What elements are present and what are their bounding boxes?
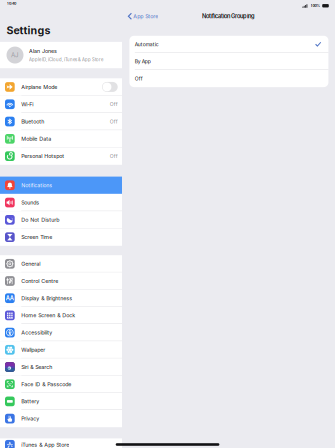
staticText: Display & Brightness [21,295,72,301]
button[interactable]: Accessibility [0,324,122,341]
staticText: Battery [21,398,39,405]
staticText: AJ [11,51,19,59]
button[interactable]: Screen Time [0,228,122,246]
button[interactable]: App Store [122,11,170,21]
staticText: Notification Grouping [202,13,255,20]
staticText: Wi-Fi [21,101,33,107]
button[interactable]: Automatic [129,36,328,53]
staticText: General [21,261,40,267]
staticText: By App [135,58,151,64]
button[interactable]: Off [129,70,328,87]
staticText: Off [110,153,118,159]
staticText: Mobile Data [21,136,51,142]
button[interactable]: Sounds [0,194,122,211]
staticText: Home Screen & Dock [21,312,75,319]
staticText: Accessibility [21,329,52,336]
staticText: Privacy [21,415,39,422]
staticText: Wallpaper [21,347,45,353]
staticText: 100% [310,4,320,8]
button[interactable]: Notifications [0,177,122,194]
staticText: Off [135,75,143,82]
staticText: Bluetooth [21,118,44,125]
button[interactable]: General [0,255,122,272]
staticText: Personal Hotspot [21,153,64,159]
button[interactable]: By App [129,53,328,70]
button[interactable]: Bluetooth [0,113,122,130]
staticText: iTunes & App Store [21,442,69,448]
staticText: Notifications [21,182,52,188]
staticText: Off [110,101,118,107]
staticText: Airplane Mode [21,84,57,90]
button[interactable]: Siri & Search [0,358,122,376]
staticText: Face ID & Passcode [21,381,71,387]
button[interactable]: Personal Hotspot [0,147,122,165]
staticText: Alan Jones [29,48,57,54]
staticText: Settings [7,24,51,37]
staticText: Automatic [135,41,159,47]
button[interactable]: Wi-Fi [0,96,122,113]
button[interactable]: AA [0,290,122,307]
staticText: AA [6,295,14,302]
button[interactable]: Battery [0,393,122,410]
button[interactable]: Wallpaper [0,341,122,358]
staticText: Screen Time [21,234,52,240]
staticText: Off [110,118,118,125]
staticText: App Store [133,13,158,19]
button[interactable]: Privacy [0,410,122,427]
button[interactable]: Home Screen & Dock [0,307,122,324]
staticText: 10:40 [7,1,16,6]
staticText: Do Not Disturb [21,217,59,223]
button[interactable]: AJ [0,42,122,68]
button[interactable]: iTunes & App Store [0,442,122,448]
staticText: Siri & Search [21,364,52,370]
staticText: Control Centre [21,278,58,284]
button[interactable]: Face ID & Passcode [0,376,122,393]
button[interactable]: Do Not Disturb [0,211,122,228]
staticText: Apple ID, iCloud, iTunes & App Store [29,57,103,62]
button[interactable]: Control Centre [0,272,122,290]
button[interactable]: Mobile Data [0,130,122,147]
staticText: Sounds [21,199,39,206]
button[interactable]: Airplane Mode [0,78,122,96]
